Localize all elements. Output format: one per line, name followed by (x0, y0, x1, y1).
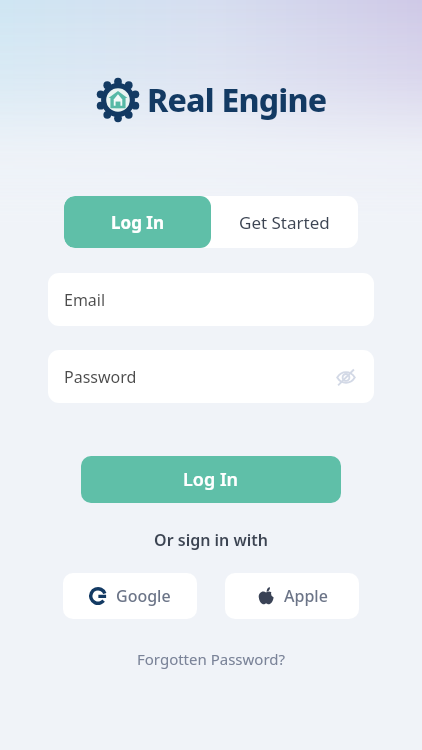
button[interactable]: Log In (81, 456, 341, 503)
staticText: Apple (284, 585, 328, 607)
staticText: Log In (183, 467, 239, 492)
button[interactable]: Google (63, 573, 197, 619)
staticText: Or sign in with (154, 529, 268, 551)
staticText: Log In (111, 211, 164, 234)
staticText: Get Started (239, 211, 330, 234)
staticText: Email (64, 289, 106, 311)
button[interactable]: Forgotten Password? (129, 645, 294, 673)
button[interactable]: Show password (332, 363, 360, 391)
button[interactable]: Apple (225, 573, 359, 619)
button[interactable]: Get Started (211, 196, 358, 248)
button[interactable]: Email (48, 273, 374, 326)
staticText: Google (116, 585, 171, 607)
button[interactable]: Log In (64, 196, 211, 248)
staticText: Forgotten Password? (137, 649, 286, 669)
button[interactable]: Password (48, 350, 374, 403)
staticText: Password (64, 366, 332, 388)
staticText: Real Engine (147, 78, 327, 122)
